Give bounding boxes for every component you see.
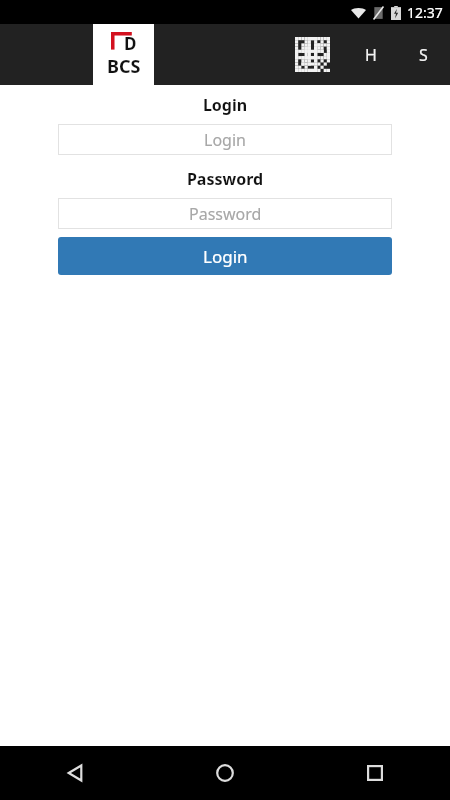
button[interactable]: Login [58, 237, 392, 275]
staticText: Password [58, 168, 392, 190]
staticText: Login [58, 94, 392, 116]
staticText: S [419, 44, 428, 66]
staticText: BCS [107, 54, 141, 79]
button[interactable]: H [345, 24, 397, 85]
button[interactable]: Back [0, 746, 150, 800]
button[interactable]: Recent apps [300, 746, 450, 800]
button[interactable]: Login [58, 124, 392, 155]
button[interactable]: Home [150, 746, 300, 800]
button[interactable]: BCS home [93, 24, 154, 85]
staticText: D [124, 32, 137, 54]
staticText: Password [189, 203, 262, 225]
button[interactable]: S [397, 24, 450, 85]
button[interactable]: Scan QR code [279, 24, 345, 85]
button[interactable]: Password [58, 198, 392, 229]
staticText: Login [203, 245, 248, 268]
staticText: Login [204, 129, 246, 151]
staticText: H [365, 44, 377, 66]
staticText: 12:37 [407, 3, 443, 22]
